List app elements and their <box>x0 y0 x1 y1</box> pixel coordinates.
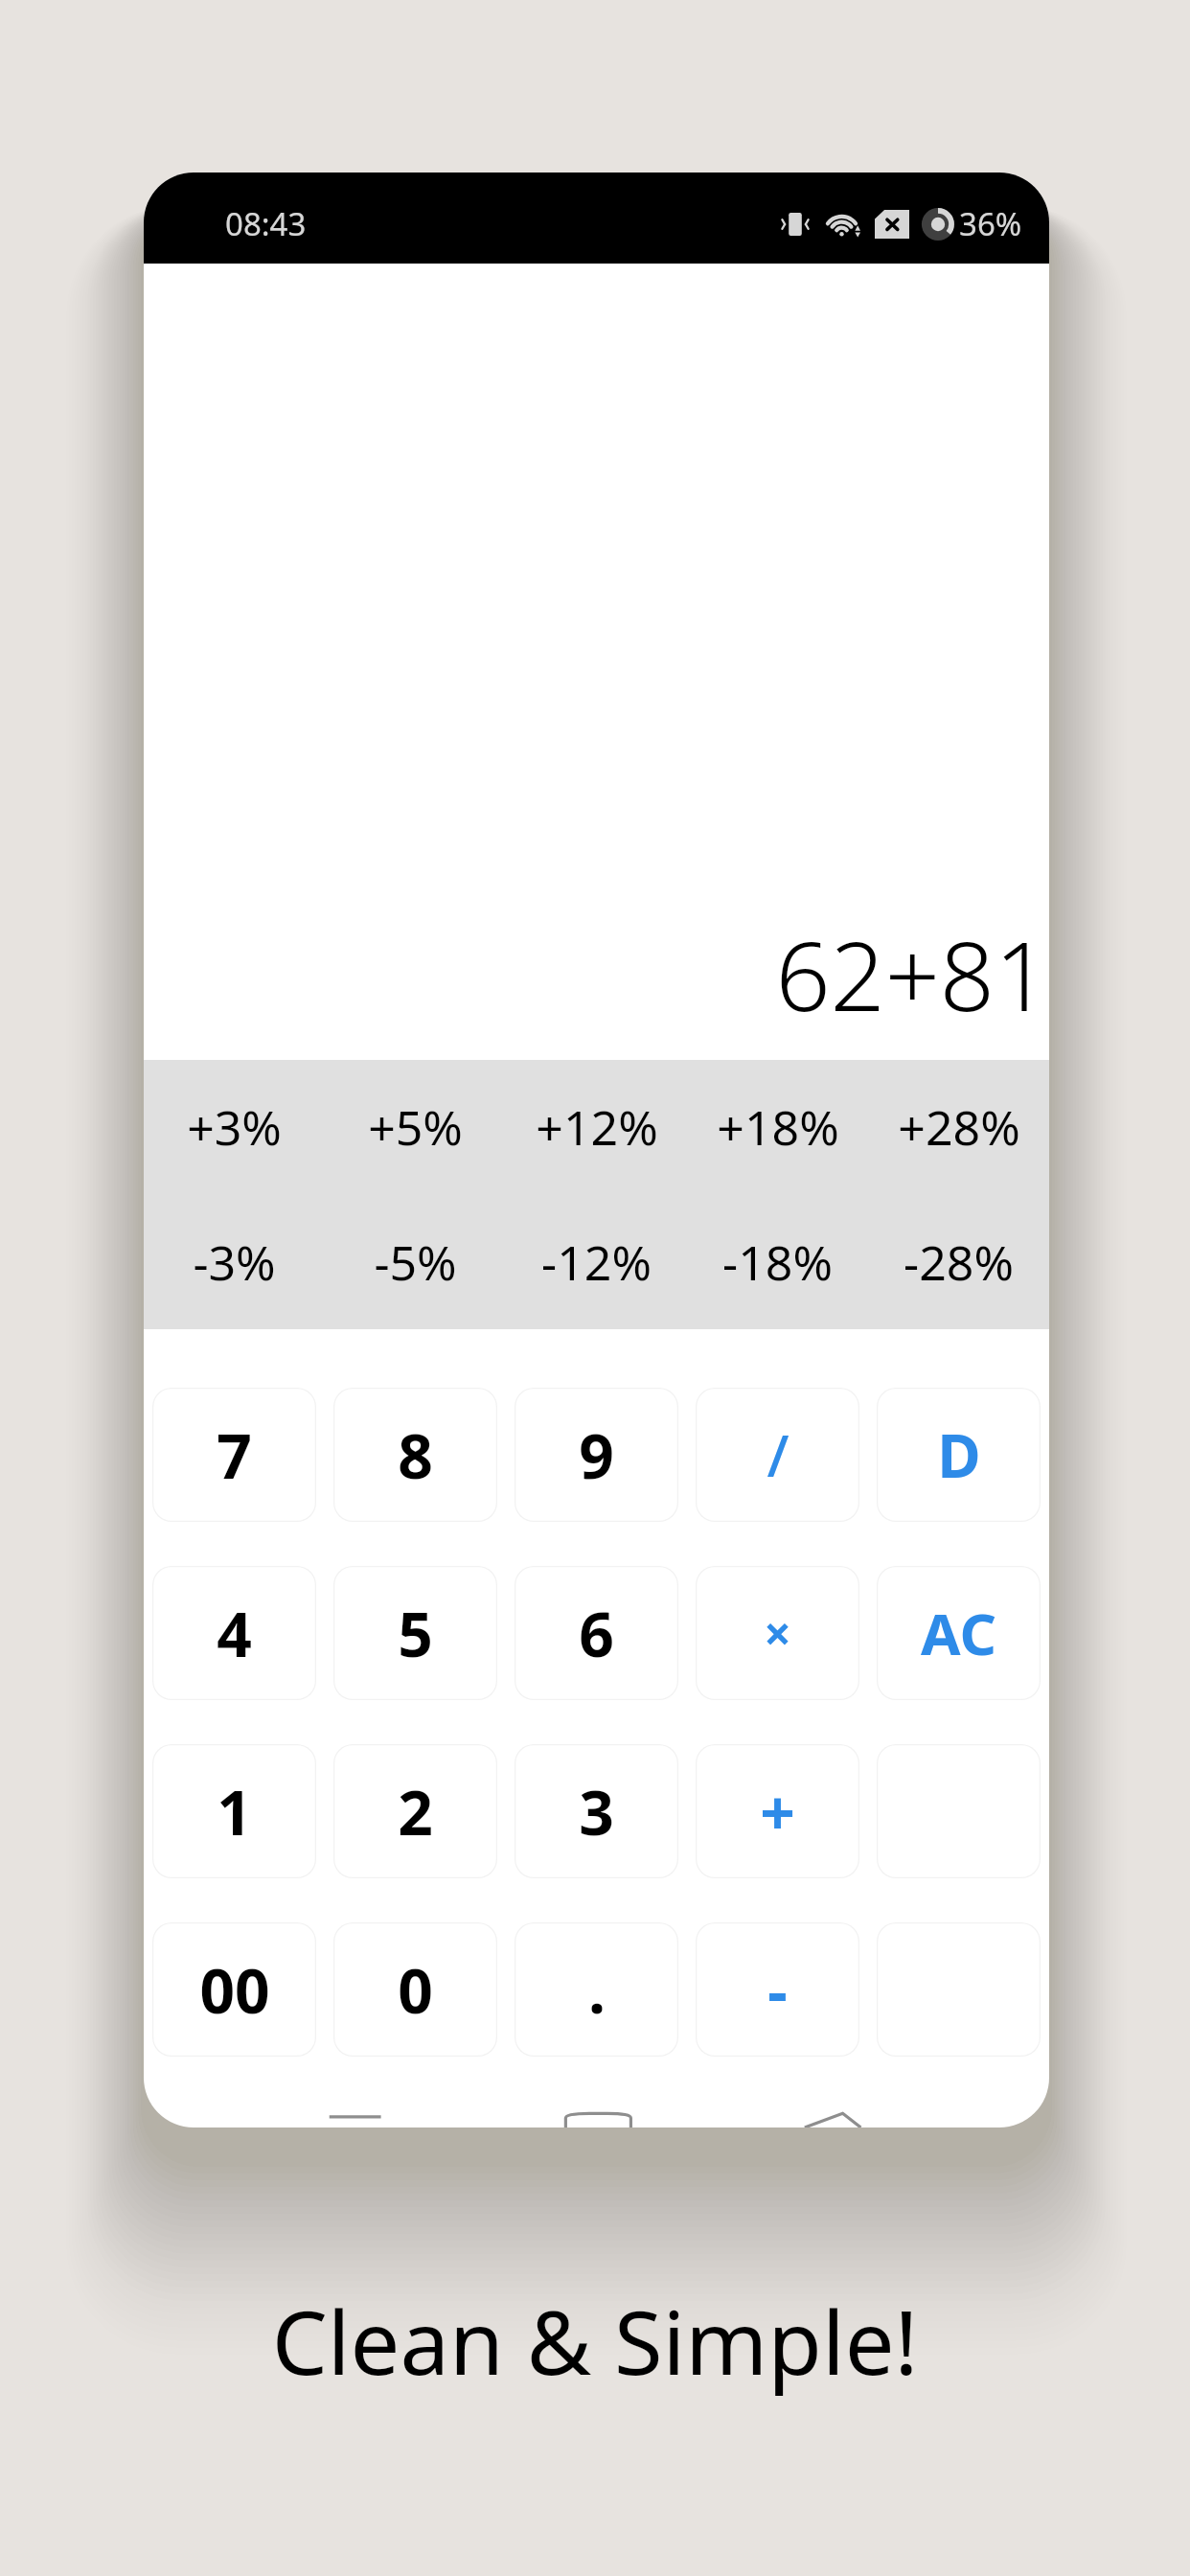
button[interactable]: 5 <box>333 1566 497 1700</box>
button[interactable]: +5% <box>325 1060 506 1194</box>
staticText: -12% <box>541 1230 652 1295</box>
button[interactable]: 8 <box>333 1388 497 1522</box>
button[interactable]: -28% <box>868 1194 1049 1329</box>
button[interactable]: -18% <box>687 1194 868 1329</box>
staticText: -18% <box>722 1230 833 1295</box>
staticText: 5 <box>398 1592 433 1675</box>
button[interactable]: +18% <box>687 1060 868 1194</box>
button[interactable]: Delete <box>877 1388 1041 1522</box>
button[interactable]: Divide <box>696 1388 859 1522</box>
button[interactable]: 7 <box>152 1388 316 1522</box>
staticText: +12% <box>536 1094 658 1160</box>
button[interactable]: 00 <box>152 1922 316 2057</box>
staticText: 4 <box>217 1592 252 1675</box>
staticText: × <box>764 1600 791 1666</box>
staticText: 00 <box>199 1948 270 2032</box>
button[interactable]: -3% <box>144 1194 325 1329</box>
button[interactable]: Multiply <box>696 1566 859 1700</box>
button[interactable]: Add <box>696 1744 859 1878</box>
staticText: . <box>588 1948 606 2032</box>
button[interactable]: 3 <box>515 1744 678 1878</box>
staticText: 62+81 <box>775 908 1049 1039</box>
staticText: 8 <box>398 1414 433 1497</box>
staticText: - <box>767 1948 788 2032</box>
staticText: 9 <box>579 1414 614 1497</box>
button[interactable]: 4 <box>152 1566 316 1700</box>
button[interactable]: +28% <box>868 1060 1049 1194</box>
staticText: Clean & Simple! <box>0 2281 1190 2401</box>
button[interactable]: -12% <box>506 1194 687 1329</box>
button[interactable]: Subtract <box>696 1922 859 2057</box>
staticText: -28% <box>904 1230 1014 1295</box>
button[interactable]: All clear <box>877 1566 1041 1700</box>
staticText: 1 <box>217 1770 252 1853</box>
staticText: +18% <box>717 1094 839 1160</box>
staticText: 0 <box>398 1948 433 2032</box>
staticText: + <box>760 1770 795 1853</box>
staticText: +3% <box>187 1094 282 1160</box>
staticText: +5% <box>368 1094 463 1160</box>
staticText: / <box>767 1415 790 1494</box>
staticText: 3 <box>579 1770 614 1853</box>
button[interactable]: 9 <box>515 1388 678 1522</box>
button[interactable]: -5% <box>325 1194 506 1329</box>
staticText: 2 <box>398 1770 433 1853</box>
button[interactable]: 6 <box>515 1566 678 1700</box>
staticText: -5% <box>374 1230 457 1295</box>
staticText: 7 <box>217 1414 252 1497</box>
staticText: AC <box>921 1594 996 1672</box>
staticText: 08:43 <box>225 202 307 245</box>
button[interactable]: 2 <box>333 1744 497 1878</box>
button[interactable]: 0 <box>333 1922 497 2057</box>
button[interactable]: +3% <box>144 1060 325 1194</box>
staticText: +28% <box>898 1094 1020 1160</box>
staticText: -3% <box>193 1230 276 1295</box>
staticText: 6 <box>579 1592 614 1675</box>
staticText: D <box>937 1414 981 1495</box>
button[interactable]: . <box>515 1922 678 2057</box>
button[interactable]: 1 <box>152 1744 316 1878</box>
staticText: 36% <box>959 202 1022 245</box>
button[interactable]: +12% <box>506 1060 687 1194</box>
